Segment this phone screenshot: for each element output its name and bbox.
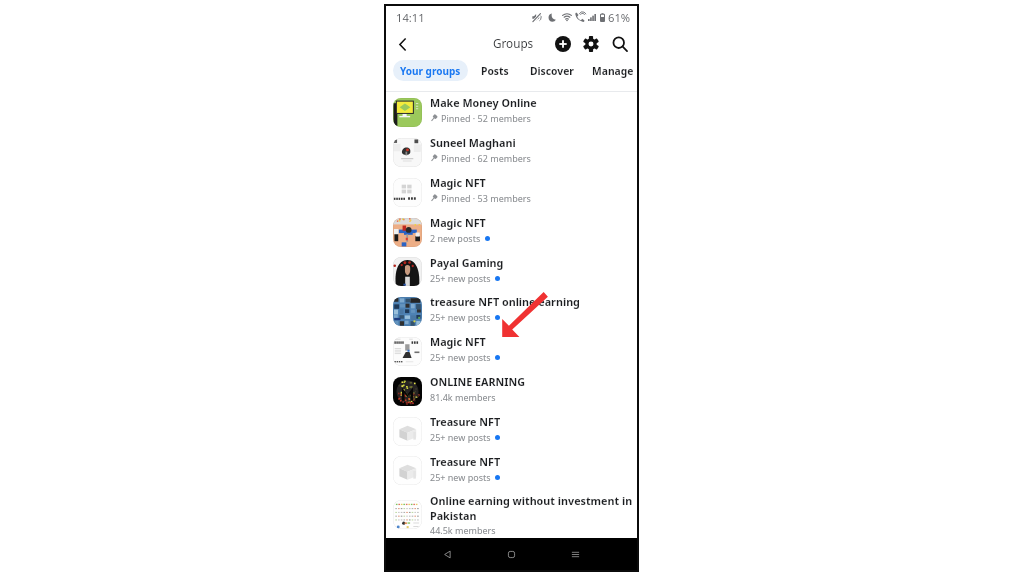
staticText: 25+ new posts <box>430 351 491 363</box>
button[interactable]: treasure NFT online earning <box>386 291 637 331</box>
staticText: 81.4k members <box>430 391 496 403</box>
staticText: Magic NFT <box>430 216 486 231</box>
staticText: Treasure NFT <box>430 455 501 470</box>
button[interactable]: Back <box>392 34 412 54</box>
button[interactable]: Create group <box>552 33 574 55</box>
staticText: 25+ new posts <box>430 311 491 323</box>
staticText: Magic NFT <box>430 335 486 350</box>
button[interactable]: Home <box>479 538 543 570</box>
button[interactable]: Search <box>609 33 631 55</box>
button[interactable]: Your groups <box>393 60 468 81</box>
button[interactable]: Manage <box>589 60 637 81</box>
staticText: Magic NFT <box>430 176 486 191</box>
button[interactable]: Recent apps <box>543 538 607 570</box>
button[interactable]: Payal Gaming <box>386 252 637 291</box>
staticText: 61% <box>608 10 631 25</box>
staticText: treasure NFT online earning <box>430 295 580 310</box>
button[interactable]: Treasure NFT <box>386 451 637 490</box>
staticText: Make Money Online <box>430 96 537 111</box>
staticText: 25+ new posts <box>430 431 491 443</box>
staticText: ONLINE EARNING <box>430 375 525 390</box>
button[interactable]: Magic NFT <box>386 331 637 371</box>
button[interactable]: Treasure NFT <box>386 411 637 451</box>
button[interactable]: ONLINE EARNING <box>386 371 637 411</box>
staticText: Manage <box>592 64 634 78</box>
button[interactable]: Back <box>416 538 479 570</box>
staticText: 25+ new posts <box>430 471 491 483</box>
staticText: Your groups <box>400 64 461 78</box>
button[interactable]: Posts <box>478 60 512 81</box>
staticText: Discover <box>530 64 574 78</box>
staticText: Pinned · 52 members <box>441 112 531 124</box>
button[interactable]: Magic NFT <box>386 172 637 212</box>
staticText: Treasure NFT <box>430 415 501 430</box>
button[interactable]: Settings <box>580 33 602 55</box>
button[interactable]: Suneel Maghani <box>386 132 637 172</box>
staticText: 44.5k members <box>430 524 496 536</box>
staticText: Pinned · 62 members <box>441 152 531 164</box>
button[interactable]: Make Money Online <box>386 92 637 132</box>
button[interactable]: Magic NFT <box>386 212 637 252</box>
staticText: Payal Gaming <box>430 256 504 271</box>
staticText: Groups <box>493 35 534 51</box>
staticText: 2 new posts <box>430 232 481 244</box>
button[interactable]: Online earning without investment in Pak… <box>386 490 637 538</box>
button[interactable]: Discover <box>527 60 577 81</box>
staticText: Online earning without investment in Pak… <box>430 494 633 523</box>
staticText: Suneel Maghani <box>430 136 516 151</box>
staticText: Posts <box>481 64 509 78</box>
staticText: Pinned · 53 members <box>441 192 531 204</box>
staticText: 25+ new posts <box>430 272 491 284</box>
staticText: 14:11 <box>396 10 425 25</box>
